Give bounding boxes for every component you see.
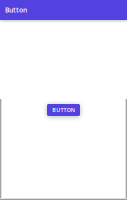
button[interactable]: BUTTON — [47, 104, 80, 116]
staticText: BUTTON — [52, 106, 75, 114]
staticText: Button — [5, 6, 27, 14]
